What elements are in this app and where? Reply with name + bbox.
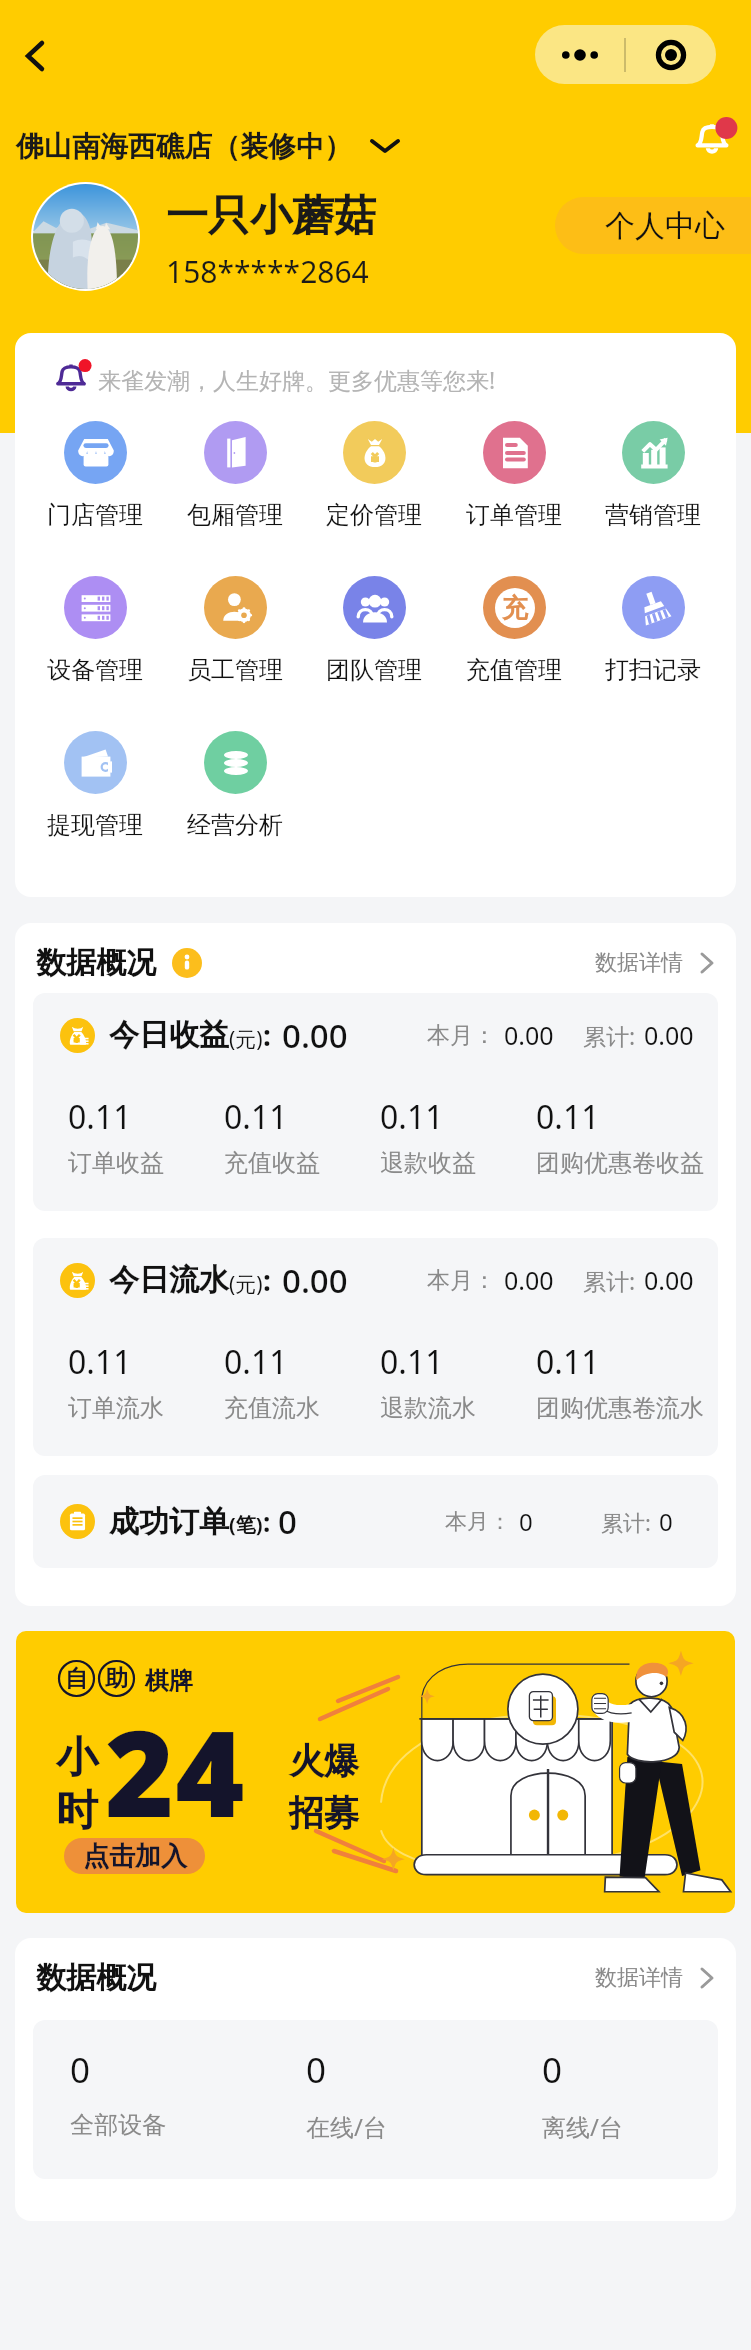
staticText: (笔) [229,1511,263,1538]
button[interactable]: 定价管理 [305,421,443,531]
staticText: 0 [278,1499,297,1544]
staticText: 在线/台 [306,2110,387,2143]
button[interactable]: Info [172,948,202,978]
staticText: 数据概况 [36,944,156,982]
button[interactable]: Close mini program [626,25,716,84]
staticText: 本月： [427,1021,496,1050]
button[interactable]: 经营分析 [166,731,304,841]
staticText: 0 [306,2046,327,2094]
staticText: 退款流水 [380,1393,476,1423]
button[interactable]: 包厢管理 [166,421,304,531]
staticText: 累计: [583,1265,636,1296]
staticText: 成功订单 [109,1503,229,1541]
staticText: 团购优惠卷收益 [536,1148,704,1178]
button[interactable]: Notifications [688,114,736,162]
staticText: 158*****2864 [166,251,369,292]
staticText: 0 [659,1505,673,1538]
staticText: 来雀发潮，人生好牌。更多优惠等您来! [98,364,496,395]
staticText: 门店管理 [47,500,143,530]
staticText: 0.11 [380,1095,444,1139]
staticText: 订单管理 [466,500,562,530]
button[interactable]: 设备管理 [26,576,164,686]
button[interactable]: 点击加入 [64,1838,205,1874]
button[interactable]: 门店管理 [26,421,164,531]
staticText: (元) [229,1270,263,1299]
staticText: 全部设备 [70,2110,166,2140]
staticText: 今日收益 [109,1016,229,1054]
staticText: 助 [105,1664,128,1693]
button[interactable]: 充 [445,576,583,686]
staticText: 退款收益 [380,1148,476,1178]
button[interactable]: 数据详情 [595,937,715,989]
staticText: : [263,1504,278,1539]
staticText: 订单流水 [68,1393,164,1423]
button[interactable]: 打扫记录 [584,576,722,686]
staticText: 24 [105,1691,246,1852]
staticText: 火爆 [289,1739,359,1783]
staticText: 0 [519,1505,533,1538]
staticText: 充值流水 [224,1393,320,1423]
staticText: 佛山南海西礁店（装修中） [16,129,352,164]
staticText: 设备管理 [47,655,143,685]
staticText: 累计: [601,1507,651,1537]
staticText: 员工管理 [187,655,283,685]
staticText: 累计: [583,1020,636,1051]
staticText: (元) [229,1025,263,1054]
staticText: 自 [65,1664,88,1693]
staticText: 个人中心 [605,207,725,245]
staticText: 数据概况 [36,1959,156,1997]
button[interactable]: Back [8,32,56,80]
staticText: 0.00 [282,1013,348,1058]
staticText: 充 [502,592,528,625]
staticText: 0.11 [380,1340,444,1384]
button[interactable]: 佛山南海西礁店（装修中） [16,124,400,168]
staticText: 订单收益 [68,1148,164,1178]
staticText: 小 [56,1732,98,1785]
button[interactable]: 个人中心 [555,197,751,254]
staticText: 充值管理 [466,655,562,685]
staticText: 0 [70,2046,91,2094]
staticText: 0.00 [644,1018,694,1052]
staticText: 0.11 [536,1340,600,1384]
staticText: 本月： [445,1508,511,1536]
button[interactable]: 员工管理 [166,576,304,686]
staticText: 本月： [427,1266,496,1295]
staticText: 营销管理 [605,500,701,530]
button[interactable]: 数据详情 [595,1952,715,2004]
button[interactable]: 营销管理 [584,421,722,531]
staticText: 今日流水 [109,1261,229,1299]
staticText: : [263,1261,271,1299]
staticText: 团购优惠卷流水 [536,1393,704,1423]
staticText: 包厢管理 [187,500,283,530]
button[interactable]: 提现管理 [26,731,164,841]
staticText: 棋牌 [145,1666,193,1696]
staticText: 定价管理 [326,500,422,530]
button[interactable]: 订单管理 [445,421,583,531]
staticText: 0.00 [644,1263,694,1297]
staticText: 点击加入 [83,1840,187,1873]
button[interactable]: 自 [16,1631,735,1913]
staticText: 团队管理 [326,655,422,685]
staticText: 0.00 [504,1018,554,1052]
staticText: 提现管理 [47,810,143,840]
staticText: 打扫记录 [605,655,701,685]
staticText: 0 [542,2046,563,2094]
staticText: 0.00 [282,1258,348,1303]
staticText: 0.11 [68,1340,132,1384]
staticText: 0.11 [68,1095,132,1139]
staticText: 0.11 [224,1095,288,1139]
button[interactable]: More options [535,25,624,84]
staticText: 时 [56,1785,98,1838]
staticText: : [263,1016,271,1054]
staticText: 经营分析 [187,810,283,840]
staticText: 离线/台 [542,2110,623,2143]
button[interactable]: Avatar [31,182,140,291]
staticText: 0.00 [504,1263,554,1297]
staticText: 充值收益 [224,1148,320,1178]
staticText: 0.11 [536,1095,600,1139]
staticText: 数据详情 [595,1964,683,1992]
staticText: 一只小蘑菇 [166,190,376,243]
staticText: 招募 [289,1791,359,1835]
button[interactable]: 团队管理 [305,576,443,686]
staticText: 0.11 [224,1340,288,1384]
